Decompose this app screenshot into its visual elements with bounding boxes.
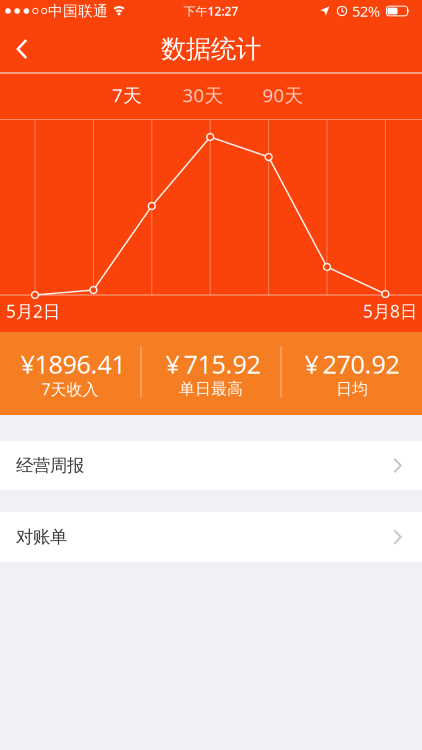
- staticText: 经营周报: [16, 455, 84, 476]
- staticText: ¥ 270.92: [304, 347, 399, 381]
- staticText: 30天: [182, 83, 223, 107]
- staticText: 数据统计: [161, 33, 261, 64]
- button[interactable]: 30天: [171, 79, 235, 111]
- button[interactable]: 7天: [97, 79, 157, 111]
- staticText: 7天: [112, 83, 142, 107]
- button[interactable]: 经营周报: [0, 441, 422, 490]
- button[interactable]: 对账单: [0, 512, 422, 562]
- staticText: 7天收入: [41, 378, 98, 400]
- staticText: ¥ 715.92: [165, 347, 260, 381]
- staticText: 单日最高: [179, 379, 243, 399]
- staticText: 日均: [336, 379, 368, 399]
- staticText: ¥1896.41: [20, 347, 125, 381]
- staticText: 5月8日: [363, 299, 417, 322]
- staticText: 对账单: [16, 526, 67, 548]
- staticText: 下午12:27: [183, 3, 238, 19]
- button[interactable]: 90天: [251, 79, 315, 111]
- staticText: 中国联通: [48, 2, 108, 20]
- staticText: 5月2日: [6, 299, 60, 322]
- staticText: 90天: [262, 83, 303, 107]
- button[interactable]: Back: [14, 37, 30, 61]
- staticText: 52%: [352, 1, 380, 21]
